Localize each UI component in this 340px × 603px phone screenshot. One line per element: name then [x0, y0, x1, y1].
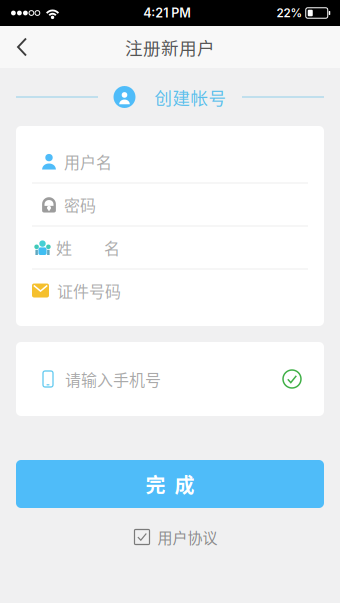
- button[interactable]: 用户协议: [122, 508, 217, 566]
- staticText: 密码: [64, 193, 96, 216]
- button[interactable]: 请输入手机号: [16, 342, 324, 416]
- staticText: 证件号码: [57, 279, 121, 302]
- button[interactable]: 完成: [16, 460, 324, 508]
- staticText: 请输入手机号: [65, 367, 161, 391]
- staticText: 用户名: [64, 150, 112, 173]
- button[interactable]: 密码: [16, 183, 324, 225]
- staticText: 注册新用户: [125, 34, 215, 60]
- button[interactable]: 证件号码: [16, 269, 324, 311]
- staticText: 姓 名: [56, 236, 120, 259]
- staticText: 创建帐号: [154, 84, 226, 110]
- button[interactable]: 姓 名: [16, 226, 324, 268]
- button[interactable]: 用户名: [16, 140, 324, 182]
- button[interactable]: Back: [0, 26, 44, 68]
- staticText: 完成: [145, 469, 194, 498]
- staticText: 22%: [276, 6, 302, 20]
- staticText: 用户协议: [157, 526, 217, 548]
- staticText: 4:21 PM: [143, 5, 191, 21]
